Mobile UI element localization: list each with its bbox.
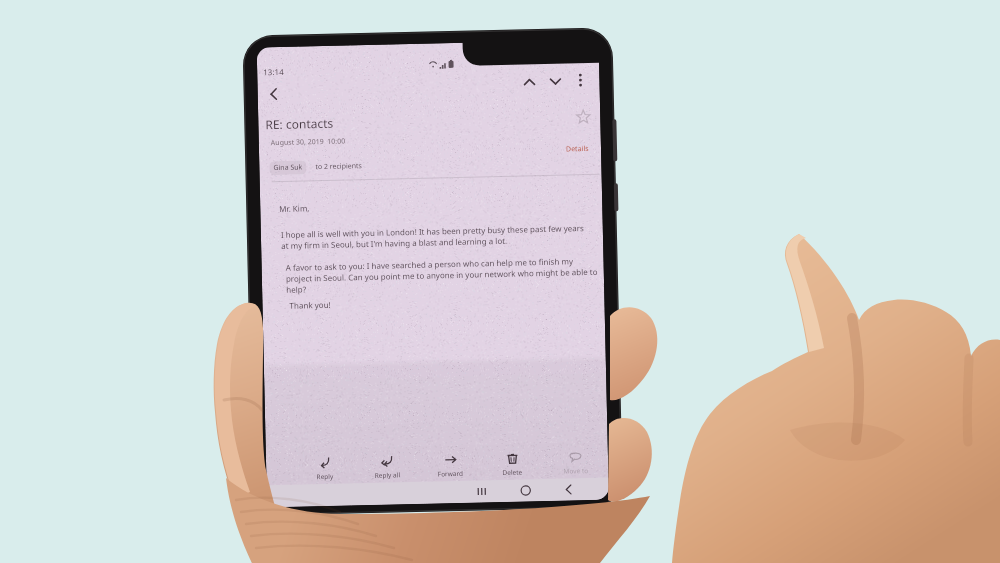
staticText: Move to	[563, 466, 588, 476]
button[interactable]: Next message	[542, 68, 569, 95]
staticText: 13:14	[263, 66, 284, 77]
button[interactable]: Forward	[422, 451, 478, 479]
button[interactable]: Previous message	[516, 69, 543, 96]
staticText: Reply	[316, 472, 333, 481]
staticText: Reply all	[374, 470, 400, 480]
staticText: I hope all is well with you in London! I…	[281, 222, 584, 251]
button[interactable]: More options	[568, 68, 593, 92]
staticText: Forward	[437, 469, 463, 478]
button[interactable]: Details	[566, 144, 589, 154]
button[interactable]: Delete	[484, 450, 540, 477]
button[interactable]: Reply all	[359, 453, 415, 480]
staticText: Delete	[502, 467, 522, 477]
staticText: to 2 recipients	[315, 161, 362, 172]
button[interactable]: Back	[552, 478, 585, 501]
button[interactable]: Reply	[296, 454, 352, 482]
button[interactable]: Recent apps	[465, 480, 498, 503]
staticText: August 30, 2019 10:00	[271, 136, 346, 148]
button[interactable]: Add star	[574, 108, 592, 126]
staticText: Gina Suk	[273, 162, 302, 173]
staticText: Thank you!	[289, 299, 332, 311]
button[interactable]: Back	[258, 79, 289, 109]
staticText: A favor to ask to you: I have searched a…	[285, 255, 598, 295]
button[interactable]: Move to	[547, 449, 603, 476]
staticText: RE: contacts	[265, 115, 333, 132]
button[interactable]: Home	[509, 479, 542, 502]
button[interactable]: Gina Suk	[269, 160, 306, 175]
staticText: Mr. Kim,	[279, 202, 310, 214]
